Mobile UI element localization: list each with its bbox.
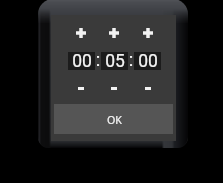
staticText: 00	[138, 51, 158, 69]
staticText: OK	[107, 113, 122, 128]
button[interactable]: Decrease hours	[68, 77, 94, 99]
button[interactable]: Increase minutes	[101, 22, 127, 44]
button[interactable]: Increase hours	[68, 22, 94, 44]
button[interactable]: Decrease seconds	[135, 77, 161, 99]
staticText: 05	[105, 51, 125, 69]
button[interactable]: 05	[101, 52, 128, 70]
button[interactable]: 00	[134, 52, 161, 70]
button[interactable]: Decrease minutes	[101, 77, 127, 99]
staticText: 00	[72, 51, 92, 69]
button[interactable]: OK	[54, 104, 173, 134]
button[interactable]: 00	[68, 52, 95, 70]
button[interactable]: Increase seconds	[135, 22, 161, 44]
